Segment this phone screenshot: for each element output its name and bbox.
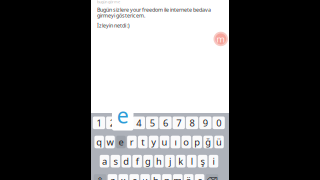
button[interactable]: ö xyxy=(184,174,193,180)
button[interactable]: e xyxy=(116,136,126,148)
staticText: d xyxy=(123,155,129,167)
staticText: 0 xyxy=(216,117,221,129)
staticText: r xyxy=(130,136,134,148)
button[interactable]: j xyxy=(165,155,175,167)
button[interactable]: y xyxy=(149,136,158,148)
staticText: k xyxy=(178,155,183,167)
staticText: ı xyxy=(174,136,176,148)
staticText: y xyxy=(151,136,156,148)
staticText: i xyxy=(212,155,214,167)
staticText: x xyxy=(121,174,126,180)
staticText: ş xyxy=(201,155,205,167)
staticText: g xyxy=(145,155,151,167)
button[interactable]: t xyxy=(138,136,147,148)
staticText: 8 xyxy=(189,117,194,129)
button[interactable]: a xyxy=(100,155,109,167)
staticText: f xyxy=(136,155,139,167)
staticText: 2 xyxy=(110,117,115,129)
button[interactable]: 0 xyxy=(212,116,225,129)
staticText: u xyxy=(162,136,168,148)
button[interactable]: m xyxy=(173,174,183,180)
button[interactable]: z xyxy=(108,174,117,180)
staticText: 3 xyxy=(123,117,128,129)
button[interactable]: 9 xyxy=(199,116,211,129)
button[interactable]: w xyxy=(105,136,115,148)
button[interactable]: ü xyxy=(214,136,224,148)
button[interactable]: ğ xyxy=(203,136,213,148)
staticText: İzleyin netdi :) xyxy=(97,22,130,29)
button[interactable]: q xyxy=(94,136,104,148)
staticText: c xyxy=(132,174,136,180)
button[interactable]: k xyxy=(176,155,186,167)
button[interactable]: o xyxy=(182,136,191,148)
staticText: ç xyxy=(198,174,202,180)
button[interactable]: f xyxy=(132,155,142,167)
staticText: ⇧ xyxy=(96,175,104,180)
staticText: h xyxy=(156,155,162,167)
button[interactable]: ı xyxy=(171,136,180,148)
staticText: o xyxy=(183,136,189,148)
button[interactable]: 6 xyxy=(159,116,172,129)
staticText: 7 xyxy=(176,117,181,129)
staticText: n xyxy=(164,174,170,180)
button[interactable]: 8 xyxy=(186,116,198,129)
staticText: b xyxy=(153,174,159,180)
button[interactable]: x xyxy=(119,174,128,180)
staticText: w xyxy=(107,136,114,148)
button[interactable]: 5 xyxy=(146,116,158,129)
button[interactable]: r xyxy=(127,136,137,148)
staticText: e xyxy=(117,101,129,129)
staticText: q xyxy=(96,136,102,148)
staticText: a xyxy=(102,155,107,167)
button[interactable]: ç xyxy=(195,174,204,180)
staticText: p xyxy=(194,136,200,148)
staticText: l xyxy=(191,155,193,167)
button[interactable]: b xyxy=(151,174,161,180)
staticText: t xyxy=(141,136,144,148)
button[interactable]: d xyxy=(121,155,131,167)
staticText: ü xyxy=(216,136,222,148)
button[interactable]: v xyxy=(140,174,150,180)
button[interactable]: h xyxy=(154,155,164,167)
staticText: ğ xyxy=(205,136,211,148)
staticText: 5 xyxy=(150,117,155,129)
button[interactable]: 2 xyxy=(106,116,118,129)
button[interactable]: c xyxy=(129,174,139,180)
button[interactable]: s xyxy=(111,155,120,167)
button[interactable]: 3 xyxy=(119,116,132,129)
staticText: girmeyi göstericem. xyxy=(97,12,145,19)
staticText: ⌫ xyxy=(206,176,217,180)
staticText: j xyxy=(169,155,171,167)
staticText: Bugün sizlere your freedom ile internete… xyxy=(97,6,211,13)
button[interactable]: 1 xyxy=(93,116,105,129)
staticText: v xyxy=(143,174,148,180)
button[interactable]: l xyxy=(187,155,196,167)
staticText: bugün görme xyxy=(97,0,120,4)
button[interactable]: i xyxy=(209,155,218,167)
staticText: ö xyxy=(186,174,192,180)
button[interactable]: g xyxy=(143,155,153,167)
staticText: 1 xyxy=(96,117,101,129)
button[interactable]: ş xyxy=(198,155,207,167)
button[interactable]: ⌫ xyxy=(206,174,218,180)
staticText: 4 xyxy=(136,117,141,129)
staticText: 9 xyxy=(203,117,208,129)
button[interactable]: 7 xyxy=(173,116,185,129)
staticText: e xyxy=(118,136,123,148)
button[interactable]: n xyxy=(162,174,172,180)
staticText: s xyxy=(113,155,117,167)
staticText: m xyxy=(216,33,225,45)
button[interactable]: u xyxy=(160,136,169,148)
staticText: m xyxy=(173,174,182,180)
staticText: z xyxy=(110,174,114,180)
button[interactable]: 4 xyxy=(133,116,145,129)
button[interactable]: p xyxy=(192,136,202,148)
button[interactable]: ⇧ xyxy=(94,174,106,180)
staticText: 6 xyxy=(163,117,168,129)
